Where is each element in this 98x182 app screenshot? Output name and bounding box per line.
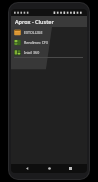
button[interactable]: Back (23, 164, 32, 173)
staticText: EXTOLLIGE (24, 30, 43, 35)
button[interactable]: Inixil 360 (11, 47, 87, 57)
button[interactable]: Recent apps (66, 164, 75, 173)
staticText: Inixil 360 (24, 50, 40, 55)
button[interactable]: Home (45, 164, 54, 173)
staticText: Rendimec CF3 (24, 40, 48, 45)
button[interactable]: Rendimec CF3 (11, 37, 87, 47)
button[interactable]: EXTOLLIGE (11, 27, 87, 37)
staticText: Aprox - Cluster (15, 18, 54, 25)
